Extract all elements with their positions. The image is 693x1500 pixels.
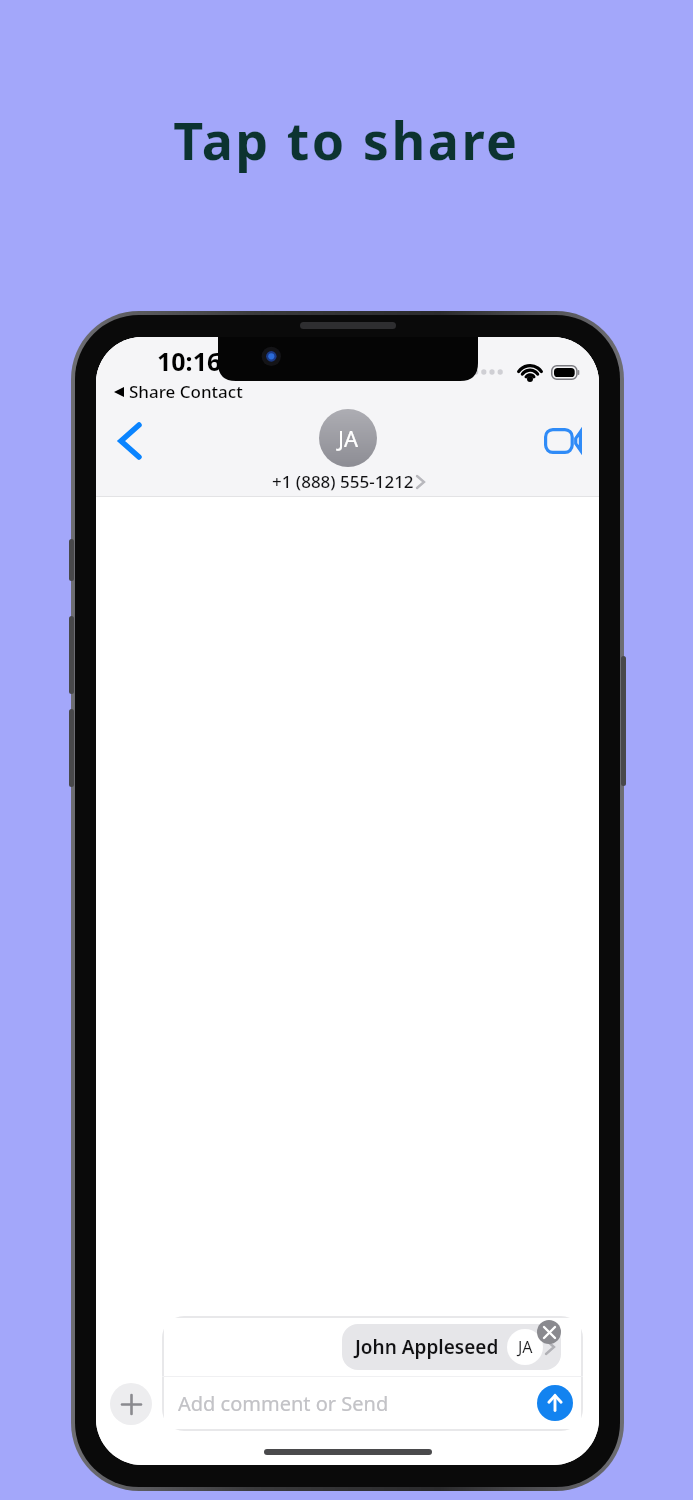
button[interactable]: Add attachment [110,1383,152,1425]
staticText: John Appleseed [355,1334,499,1360]
staticText: Tap to share [173,104,520,175]
staticText: Share Contact [129,380,243,403]
staticText: JA [338,423,359,453]
button[interactable]: John Appleseed [342,1324,561,1370]
staticText: Add comment or Send [178,1390,389,1417]
button[interactable]: Remove contact [537,1320,561,1344]
staticText: 10:16 [157,344,222,378]
staticText: +1 (888) 555-1212 [272,470,414,493]
button[interactable]: Send [537,1385,573,1421]
staticText: JA [518,1336,533,1358]
button[interactable]: Back [102,413,158,469]
button[interactable]: Video call [535,413,591,469]
button[interactable]: JA [272,409,424,493]
